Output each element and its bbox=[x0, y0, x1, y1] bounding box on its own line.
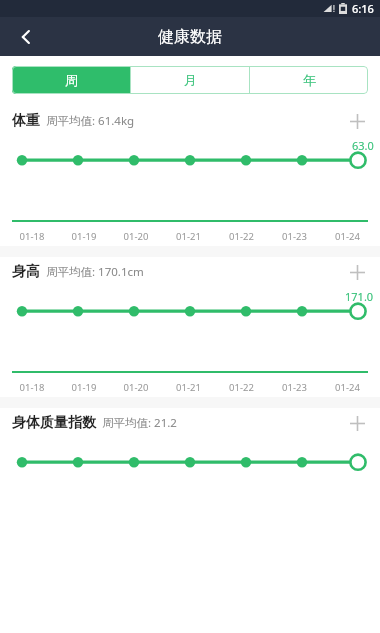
staticText: 身体质量指数 bbox=[12, 414, 96, 432]
staticText: 01-20 bbox=[110, 381, 162, 394]
staticText: 01-23 bbox=[268, 381, 321, 394]
button[interactable]: Back bbox=[6, 17, 46, 56]
button[interactable]: Add record bbox=[342, 408, 372, 438]
staticText: 01-18 bbox=[6, 230, 58, 243]
staticText: 01-22 bbox=[215, 230, 268, 243]
staticText: 171.0 bbox=[345, 289, 374, 304]
staticText: 01-21 bbox=[162, 381, 215, 394]
staticText: 体重 bbox=[12, 112, 40, 130]
staticText: 63.0 bbox=[352, 138, 374, 153]
staticText: 身高 bbox=[12, 263, 40, 281]
staticText: 周平均值: 170.1cm bbox=[46, 264, 144, 280]
staticText: 周平均值: 21.2 bbox=[102, 415, 177, 431]
button[interactable]: 月 bbox=[131, 66, 249, 94]
staticText: 01-20 bbox=[110, 230, 162, 243]
button[interactable]: Add record bbox=[342, 106, 372, 136]
staticText: 健康数据 bbox=[158, 27, 222, 47]
staticText: 周 bbox=[65, 72, 78, 88]
staticText: 01-21 bbox=[162, 230, 215, 243]
staticText: 01-19 bbox=[58, 230, 110, 243]
staticText: 01-22 bbox=[215, 381, 268, 394]
button[interactable]: 年 bbox=[250, 66, 368, 94]
button[interactable]: 周 bbox=[12, 66, 130, 94]
staticText: 01-18 bbox=[6, 381, 58, 394]
staticText: 周平均值: 61.4kg bbox=[46, 113, 135, 129]
staticText: 01-23 bbox=[268, 230, 321, 243]
staticText: 6:16 bbox=[352, 1, 374, 16]
staticText: 01-24 bbox=[321, 381, 374, 394]
staticText: 月 bbox=[184, 72, 197, 88]
staticText: 年 bbox=[303, 72, 316, 88]
staticText: 01-19 bbox=[58, 381, 110, 394]
button[interactable]: Add record bbox=[342, 257, 372, 287]
staticText: 01-24 bbox=[321, 230, 374, 243]
